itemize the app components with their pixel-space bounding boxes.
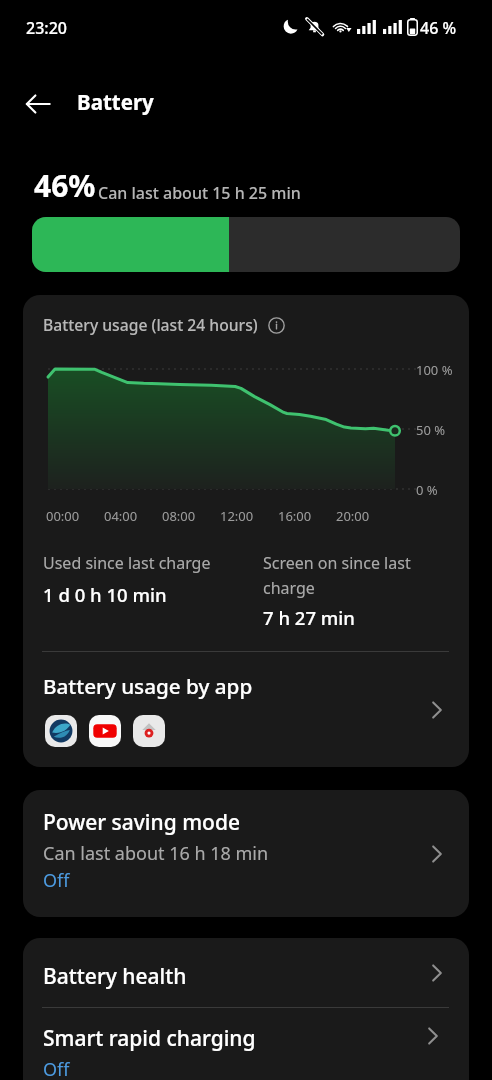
button[interactable]: Battery usage by app: [23, 652, 469, 767]
staticText: Can last about 16 h 18 min: [43, 841, 269, 866]
button[interactable]: [45, 715, 77, 747]
staticText: 23:20: [26, 17, 67, 39]
staticText: 16:00: [278, 507, 312, 525]
button[interactable]: [133, 715, 165, 747]
staticText: Battery: [77, 88, 154, 116]
staticText: 46 %: [420, 17, 457, 39]
button[interactable]: Smart rapid charging: [23, 1008, 469, 1080]
button[interactable]: [32, 217, 460, 272]
staticText: Off: [43, 868, 70, 893]
staticText: Used since last charge: [43, 552, 211, 574]
staticText: 46%: [34, 165, 96, 206]
button[interactable]: Battery health: [23, 938, 469, 1007]
staticText: 08:00: [162, 507, 196, 525]
staticText: 20:00: [336, 507, 370, 525]
staticText: 1 d 0 h 10 min: [43, 582, 167, 607]
button[interactable]: Power saving mode: [23, 790, 469, 917]
button[interactable]: Back: [14, 80, 62, 128]
staticText: Can last about 15 h 25 min: [98, 182, 301, 204]
staticText: Screen on since last charge: [263, 552, 433, 598]
staticText: Power saving mode: [43, 808, 240, 837]
staticText: Battery usage (last 24 hours): [43, 314, 258, 335]
button[interactable]: Info: [266, 315, 286, 335]
staticText: Off: [43, 1057, 70, 1080]
staticText: Battery usage by app: [43, 672, 253, 700]
staticText: 00:00: [46, 507, 80, 525]
staticText: 04:00: [104, 507, 138, 525]
staticText: 50 %: [416, 421, 446, 439]
staticText: Smart rapid charging: [43, 1024, 256, 1053]
staticText: Battery health: [43, 962, 187, 991]
staticText: 0 %: [416, 481, 438, 499]
staticText: 12:00: [220, 507, 254, 525]
staticText: 7 h 27 min: [263, 605, 355, 630]
staticText: 100 %: [416, 361, 453, 379]
button[interactable]: [89, 715, 121, 747]
